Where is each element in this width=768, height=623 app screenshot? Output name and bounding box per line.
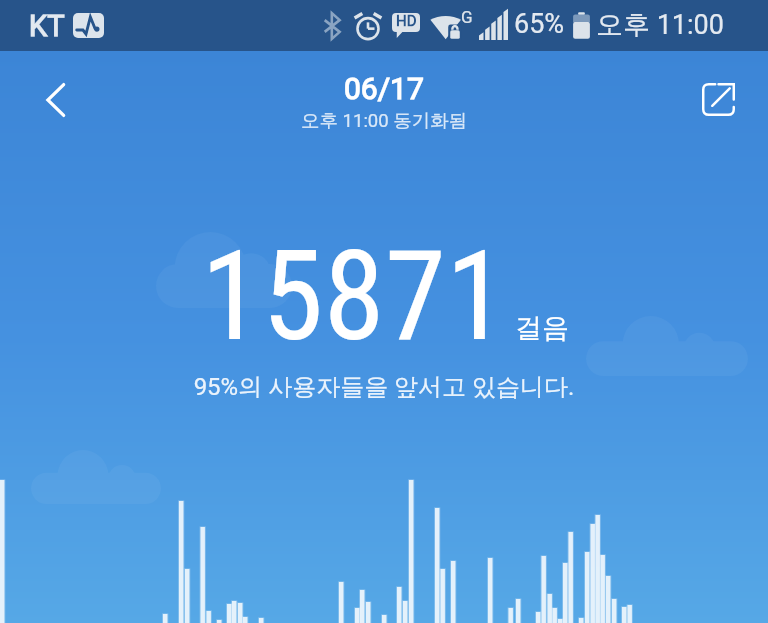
staticText: 걸음 [515,311,569,345]
staticText: 06/17 [344,71,424,106]
staticText: KT [29,9,65,43]
staticText: 15871 [201,224,508,369]
staticText: G [461,7,473,27]
staticText: 65% [514,8,565,40]
staticText: 오후 11:00 동기화됨 [301,109,468,132]
button[interactable]: Share [684,66,750,132]
staticText: 95%의 사용자들을 앞서고 있습니다. [0,372,768,402]
staticText: 오후 11:00 [596,8,724,42]
staticText: HD [396,12,417,30]
button[interactable]: Back [22,66,90,134]
